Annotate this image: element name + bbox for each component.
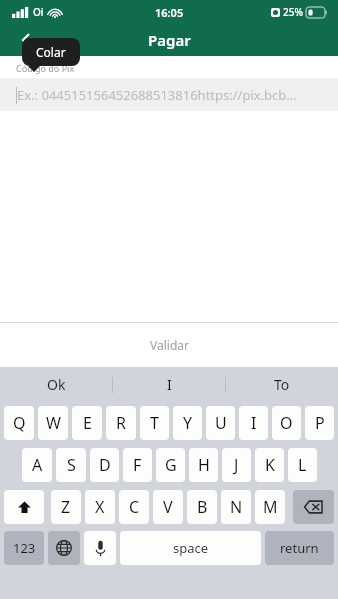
button[interactable]: Ex.: 044515156452688513816https://pix.bc… [0, 78, 338, 111]
button[interactable]: Q [4, 406, 34, 440]
staticText: Código do Pix [16, 62, 75, 74]
button[interactable]: Voltar [8, 24, 44, 56]
staticText: return [280, 539, 319, 557]
staticText: M [263, 496, 278, 518]
button[interactable]: 123 [4, 531, 44, 565]
button[interactable]: Ditado por voz [84, 531, 116, 565]
staticText: Pagar [148, 30, 191, 50]
staticText: R [116, 412, 126, 434]
staticText: U [215, 412, 227, 434]
staticText: Y [183, 412, 193, 434]
button[interactable]: F [123, 448, 152, 482]
staticText: N [230, 496, 243, 518]
staticText: K [265, 454, 275, 476]
button[interactable]: Ok [0, 367, 112, 402]
button[interactable]: W [38, 406, 68, 440]
staticText: X [95, 496, 105, 518]
button[interactable]: V [153, 490, 183, 524]
staticText: Q [13, 412, 26, 434]
staticText: 123 [13, 539, 36, 557]
staticText: Validar [150, 337, 189, 353]
button[interactable]: M [255, 490, 285, 524]
button[interactable]: To [226, 367, 338, 402]
staticText: B [197, 496, 208, 518]
button[interactable]: Y [173, 406, 202, 440]
button[interactable]: B [187, 490, 217, 524]
staticText: C [129, 496, 140, 518]
button[interactable]: J [222, 448, 251, 482]
button[interactable]: G [156, 448, 185, 482]
staticText: space [173, 539, 209, 557]
staticText: T [150, 412, 159, 434]
staticText: L [298, 454, 307, 476]
staticText: H [198, 454, 210, 476]
button[interactable]: D [90, 448, 119, 482]
staticText: F [133, 454, 142, 476]
staticText: J [234, 454, 239, 476]
button[interactable]: R [106, 406, 136, 440]
staticText: Ok [47, 375, 66, 394]
staticText: Oi [33, 5, 44, 19]
staticText: P [315, 412, 325, 434]
staticText: G [165, 454, 177, 476]
staticText: 16:05 [155, 5, 184, 20]
button[interactable]: I [239, 406, 268, 440]
staticText: To [274, 375, 290, 394]
button[interactable]: Apagar [293, 490, 334, 524]
staticText: 25% [283, 5, 303, 19]
button[interactable]: O [272, 406, 301, 440]
button[interactable]: Colar [22, 38, 80, 66]
button[interactable]: N [221, 490, 251, 524]
staticText: W [46, 412, 61, 434]
staticText: O [280, 412, 293, 434]
staticText: Ex.: 044515156452688513816https://pix.bc… [17, 86, 297, 104]
staticText: A [32, 454, 43, 476]
staticText: I [167, 375, 172, 394]
staticText: S [67, 454, 76, 476]
button[interactable]: X [85, 490, 115, 524]
button[interactable]: C [119, 490, 149, 524]
staticText: E [83, 412, 92, 434]
staticText: V [163, 496, 173, 518]
button[interactable]: K [255, 448, 284, 482]
button[interactable]: return [265, 531, 334, 565]
staticText: D [99, 454, 111, 476]
button[interactable]: L [288, 448, 317, 482]
button[interactable]: space [120, 531, 261, 565]
staticText: I [251, 412, 257, 434]
button[interactable]: Validar [0, 323, 338, 367]
button[interactable]: A [22, 448, 52, 482]
button[interactable]: P [305, 406, 334, 440]
button[interactable]: U [206, 406, 235, 440]
staticText: Colar [36, 44, 66, 60]
button[interactable]: I [113, 367, 225, 402]
button[interactable]: T [140, 406, 169, 440]
button[interactable]: H [189, 448, 218, 482]
staticText: Z [61, 496, 71, 518]
button[interactable]: Shift [4, 490, 44, 524]
button[interactable]: Z [51, 490, 81, 524]
button[interactable]: S [56, 448, 86, 482]
button[interactable]: E [72, 406, 102, 440]
button[interactable]: Mudar idioma [48, 531, 80, 565]
